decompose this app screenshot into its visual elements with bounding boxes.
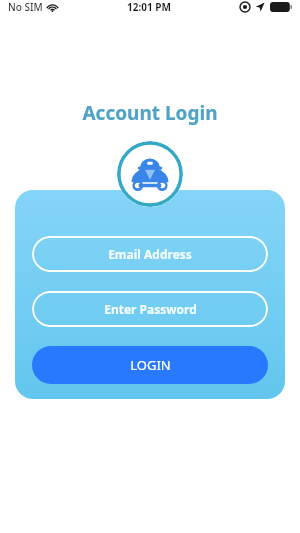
staticText: Enter Password	[104, 301, 197, 317]
staticText: LOGIN	[130, 356, 171, 374]
button[interactable]: LOGIN	[32, 346, 268, 384]
staticText: Account Login	[0, 100, 300, 126]
staticText: No SIM	[8, 0, 43, 14]
other: Account avatar	[117, 141, 183, 207]
button[interactable]: Enter Password	[32, 291, 268, 327]
staticText: 12:01 PM	[127, 0, 171, 14]
button[interactable]: Email Address	[32, 236, 268, 272]
staticText: Email Address	[108, 246, 192, 262]
